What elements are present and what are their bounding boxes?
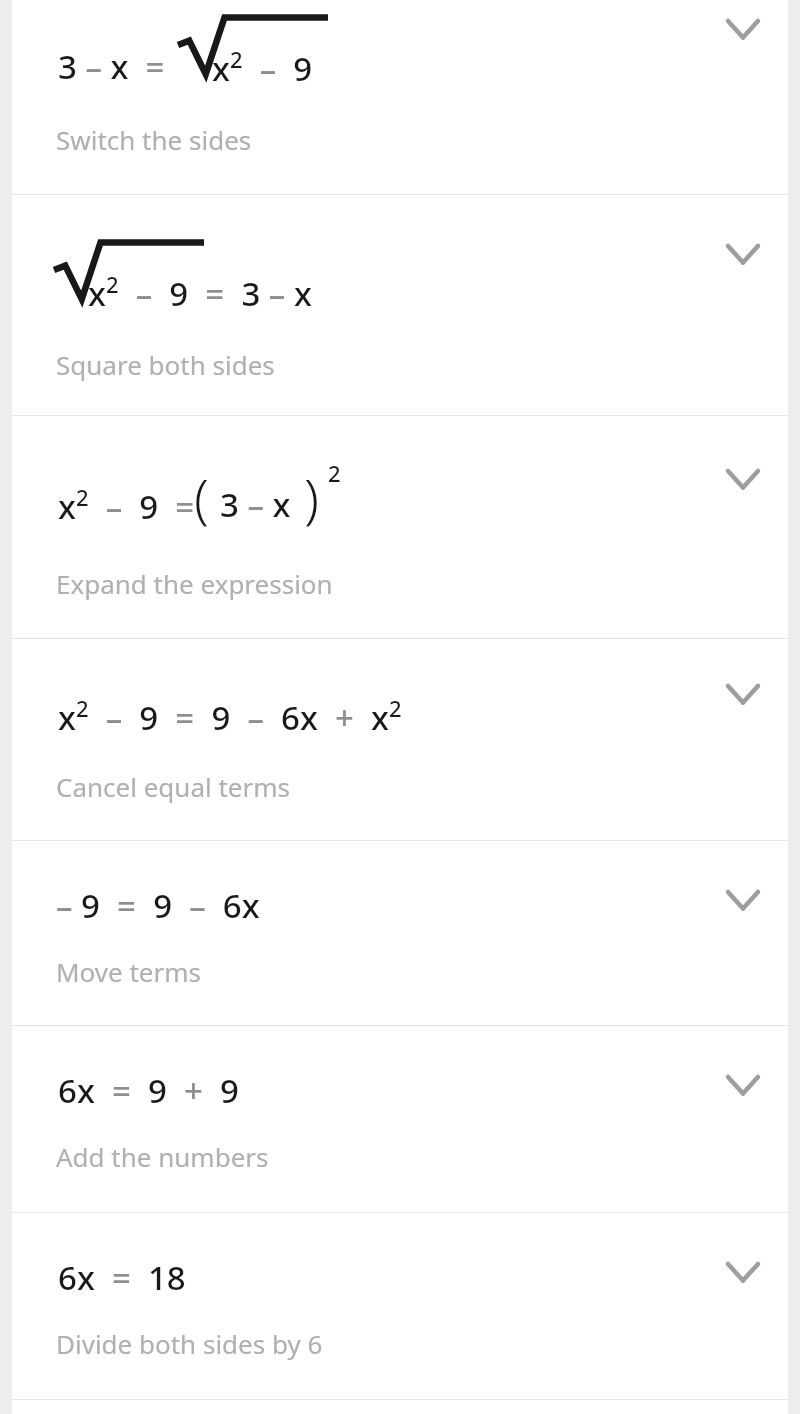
staticText: x2 – 9 = 9 – 6x + x2 (58, 693, 402, 740)
staticText: x2 – 9 = 3 – x (88, 269, 312, 316)
staticText: 3 – x = (58, 44, 182, 89)
button[interactable]: 6x = 9 + 9 (12, 1026, 788, 1212)
staticText: Divide both sides by 6 (56, 1326, 323, 1361)
button[interactable]: x2 – 9 = (12, 416, 788, 638)
staticText: Cancel equal terms (56, 769, 291, 804)
button[interactable]: 6x = 18 (12, 1213, 788, 1399)
staticText: Move terms (56, 954, 201, 989)
staticText: x2 – 9 (212, 44, 313, 91)
staticText: ) (304, 460, 319, 534)
staticText: 6x = 18 (58, 1255, 186, 1300)
staticText: 6x = 9 + 9 (58, 1068, 239, 1113)
button[interactable]: – 9 = 9 – 6x (12, 841, 788, 1025)
staticText: 3 – x (220, 482, 291, 527)
button[interactable]: x2 – 9 = 3 – x (12, 195, 788, 415)
staticText: – 9 = 9 – 6x (56, 883, 260, 928)
button[interactable]: Expand step (720, 231, 766, 277)
staticText: Switch the sides (56, 122, 252, 157)
button[interactable]: Expand step (720, 6, 766, 52)
staticText: Expand the expression (56, 566, 333, 601)
staticText: ( (194, 460, 209, 534)
button[interactable]: Expand step (720, 1249, 766, 1295)
staticText: x2 – 9 = (58, 482, 212, 529)
button[interactable]: x2 – 9 = 9 – 6x + x2 (12, 639, 788, 840)
staticText: 2 (328, 458, 341, 488)
staticText: Add the numbers (56, 1139, 269, 1174)
button[interactable]: Expand step (720, 671, 766, 717)
button[interactable]: Expand step (720, 1062, 766, 1108)
button[interactable]: Expand step (720, 877, 766, 923)
button[interactable]: 3 – x = (12, 0, 788, 194)
button[interactable]: Expand step (720, 456, 766, 502)
staticText: Square both sides (56, 347, 275, 382)
